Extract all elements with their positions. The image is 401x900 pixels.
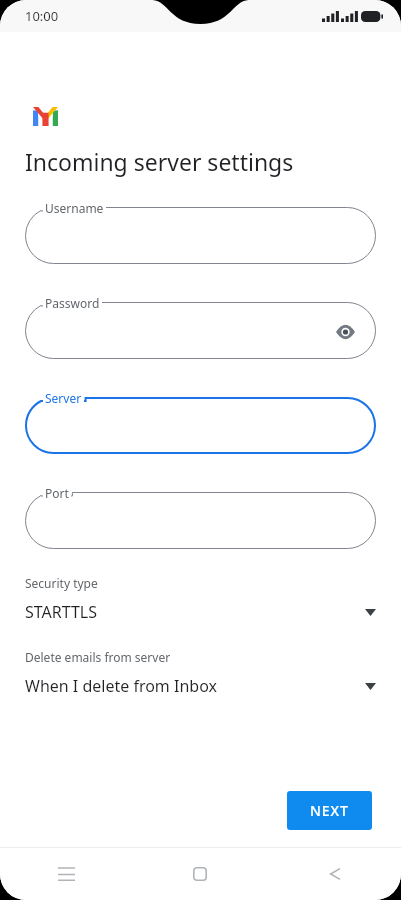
button[interactable]: Recents (0, 848, 133, 900)
button[interactable]: Delete emails from server (0, 649, 401, 697)
button[interactable]: Port (25, 484, 376, 549)
staticText: NEXT (310, 801, 349, 820)
button[interactable]: Password (25, 294, 376, 359)
staticText: When I delete from Inbox (25, 675, 365, 697)
button[interactable]: Security type (0, 575, 401, 623)
button[interactable]: NEXT (287, 791, 372, 830)
staticText: Delete emails from server (25, 649, 171, 665)
staticText: Server (45, 390, 82, 406)
staticText: STARTTLS (25, 601, 365, 623)
staticText: Password (45, 295, 100, 311)
staticText: Incoming server settings (25, 146, 294, 177)
button[interactable]: Back (267, 848, 401, 900)
button[interactable]: Home (133, 848, 267, 900)
button[interactable]: Server (25, 389, 376, 454)
staticText: Username (45, 200, 104, 216)
button[interactable]: Show password (330, 317, 360, 347)
staticText: Security type (25, 575, 98, 591)
staticText: Port (45, 485, 69, 501)
button[interactable]: Username (25, 199, 376, 264)
staticText: 10:00 (25, 7, 59, 25)
